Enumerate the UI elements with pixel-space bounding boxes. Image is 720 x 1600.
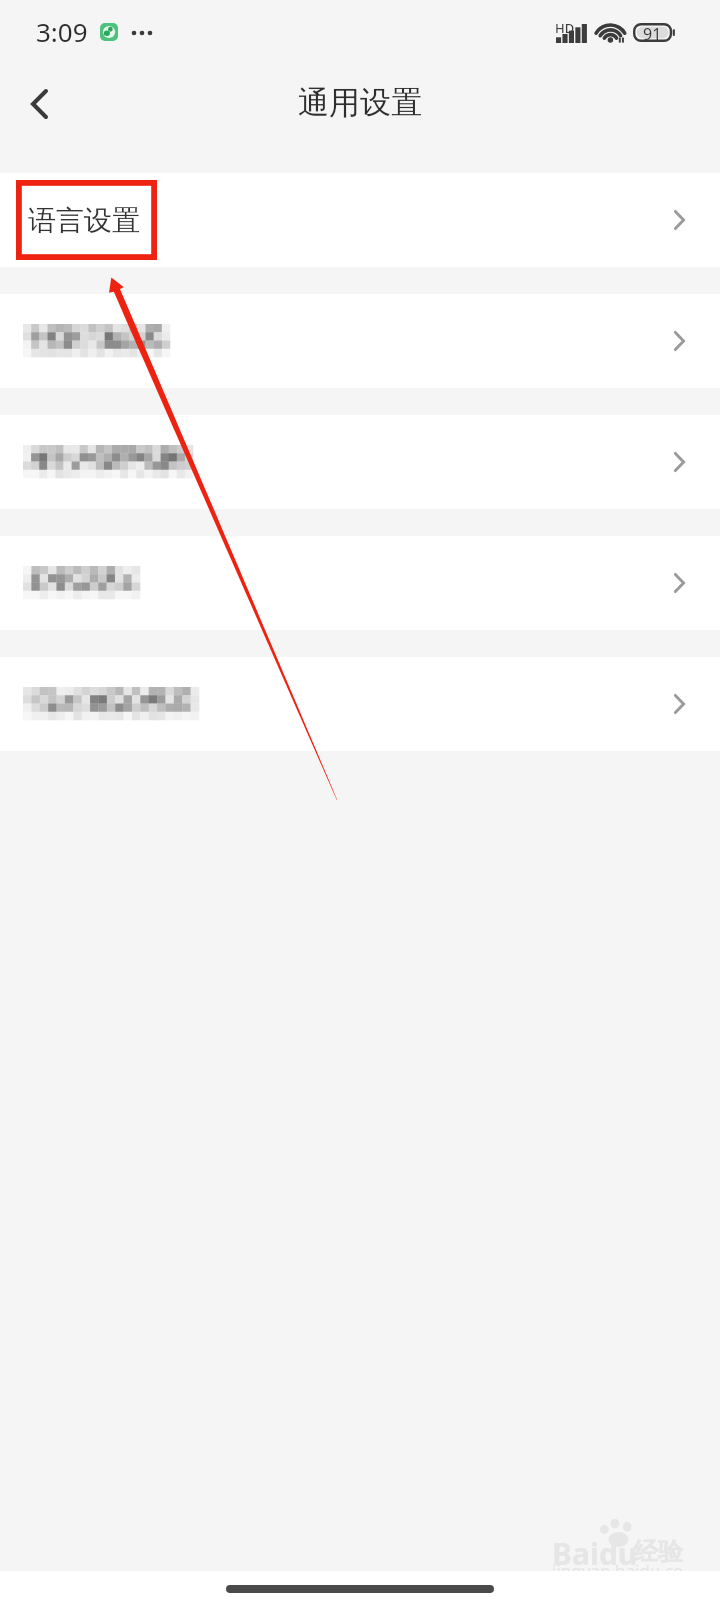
button[interactable]: 设置项 3	[0, 415, 720, 509]
button[interactable]: Back	[7, 72, 71, 136]
staticText: Baidu	[552, 1533, 638, 1574]
staticText: jingyan.baidu.com	[552, 1559, 692, 1600]
button[interactable]: 设置项 5	[0, 657, 720, 751]
staticText: 3:09	[36, 14, 88, 49]
staticText: 语言设置	[28, 203, 140, 238]
staticText: 通用设置	[298, 83, 422, 122]
staticText: HD	[555, 19, 575, 37]
staticText: 91	[643, 23, 662, 42]
button[interactable]: 设置项 4	[0, 536, 720, 630]
button[interactable]: 设置项 2	[0, 294, 720, 388]
staticText: 经验	[633, 1536, 683, 1567]
button[interactable]: 语言设置	[0, 173, 720, 267]
